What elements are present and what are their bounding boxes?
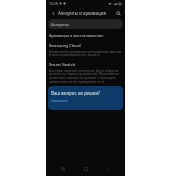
- staticText: Samsung Cloud: [49, 42, 81, 48]
- button[interactable]: Smart Switch: [46, 59, 125, 86]
- button[interactable]: Back: [48, 8, 58, 18]
- staticText: Ваш вопрос не решен?: [51, 90, 100, 96]
- staticText: Быстрый перенос контактов, фото и других…: [49, 68, 123, 84]
- button[interactable]: Аккаунты: [48, 19, 123, 29]
- button[interactable]: Recent apps: [57, 163, 69, 175]
- staticText: Выполняйте резервное копирование данных …: [49, 49, 123, 57]
- staticText: Связаться: [51, 98, 68, 103]
- button[interactable]: Back: [102, 163, 114, 175]
- staticText: Архивация и восстановление: [49, 33, 104, 38]
- staticText: Smart Switch: [49, 61, 76, 67]
- staticText: Аккаунты: [51, 22, 70, 27]
- button[interactable]: Home: [80, 163, 92, 175]
- staticText: Аккаунты и архивация: [58, 10, 106, 16]
- staticText: 10:08: [49, 1, 58, 6]
- button[interactable]: Ваш вопрос не решен?: [48, 86, 123, 110]
- button[interactable]: Samsung Cloud: [46, 40, 125, 59]
- button[interactable]: Search: [113, 8, 123, 18]
